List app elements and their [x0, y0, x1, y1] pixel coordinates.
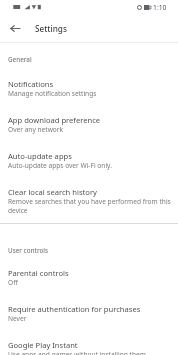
- button[interactable]: App download preference: [0, 109, 178, 145]
- staticText: Require authentication for purchases: [8, 304, 141, 314]
- button[interactable]: Require authentication for purchases: [0, 298, 178, 334]
- button[interactable]: Google Play Instant: [0, 334, 178, 355]
- staticText: Off: [8, 278, 18, 287]
- button[interactable]: Notifications: [0, 73, 178, 109]
- button[interactable]: Back: [4, 18, 25, 39]
- staticText: Auto-update apps: [8, 151, 72, 161]
- staticText: Use apps and games without installing th…: [8, 350, 146, 355]
- staticText: Parental controls: [8, 268, 69, 278]
- staticText: Remove searches that you have performed …: [8, 197, 174, 215]
- staticText: Notifications: [8, 79, 54, 89]
- button[interactable]: Auto-update apps: [0, 145, 178, 181]
- button[interactable]: Clear local search history: [0, 181, 178, 225]
- staticText: Auto-update apps over Wi-Fi only.: [8, 161, 112, 170]
- staticText: Over any network: [8, 125, 64, 134]
- staticText: App download preference: [8, 115, 101, 125]
- staticText: Google Play Instant: [8, 340, 78, 350]
- staticText: User controls: [8, 246, 49, 255]
- staticText: Never: [8, 314, 27, 323]
- button[interactable]: Parental controls: [0, 262, 178, 298]
- staticText: Manage notification settings: [8, 89, 97, 98]
- staticText: Settings: [35, 23, 67, 34]
- staticText: Clear local search history: [8, 187, 97, 197]
- staticText: 1:10: [153, 3, 167, 12]
- staticText: General: [8, 55, 32, 64]
